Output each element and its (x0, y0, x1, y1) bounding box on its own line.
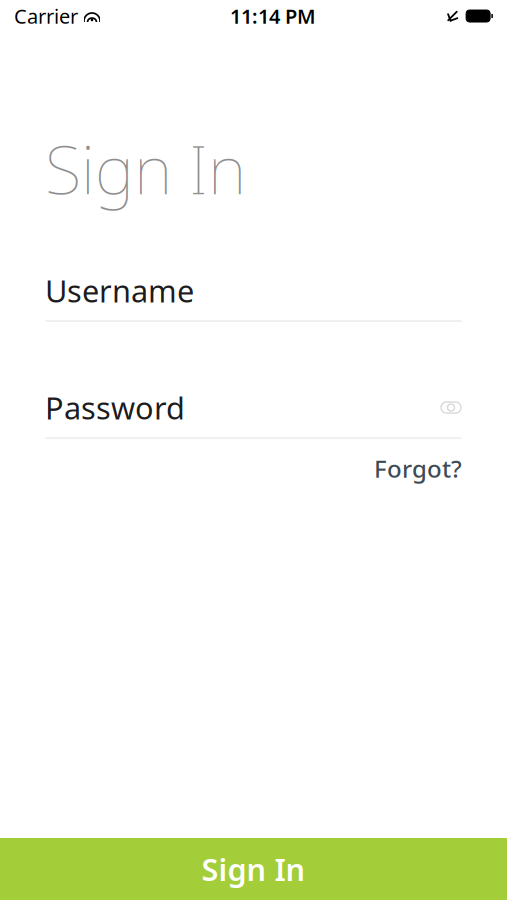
staticText: Password (45, 387, 185, 428)
button[interactable]: Sign In (0, 838, 507, 900)
staticText: Forgot? (374, 452, 462, 484)
staticText: Sign In (45, 124, 246, 212)
button[interactable]: Forgot? (374, 452, 462, 484)
staticText: Sign In (201, 849, 305, 889)
button[interactable]: Show password (440, 396, 462, 418)
staticText: Username (45, 270, 194, 311)
staticText: 11:14 PM (230, 3, 316, 29)
staticText: Carrier (14, 3, 78, 29)
